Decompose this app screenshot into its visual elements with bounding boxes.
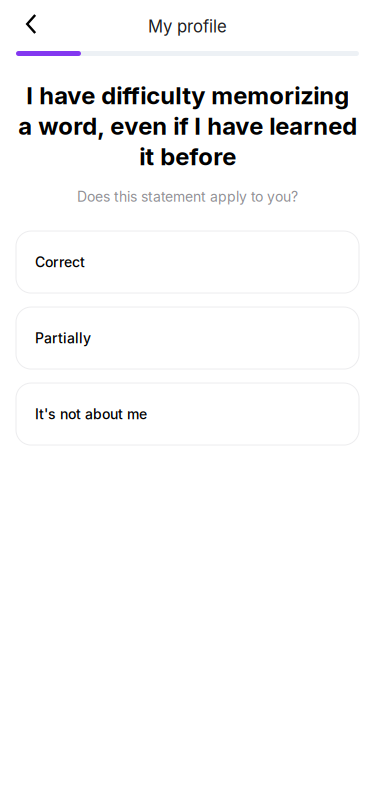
staticText: Correct bbox=[35, 254, 85, 270]
button[interactable]: Partially bbox=[16, 307, 359, 369]
staticText: It's not about me bbox=[35, 406, 147, 422]
button[interactable]: Back bbox=[16, 2, 62, 46]
button[interactable]: It's not about me bbox=[16, 383, 359, 445]
staticText: My profile bbox=[148, 16, 227, 37]
button[interactable]: Correct bbox=[16, 231, 359, 293]
staticText: Partially bbox=[35, 330, 91, 346]
staticText: I have difficulty memorizing a word, eve… bbox=[18, 81, 357, 171]
staticText: Does this statement apply to you? bbox=[77, 188, 298, 205]
